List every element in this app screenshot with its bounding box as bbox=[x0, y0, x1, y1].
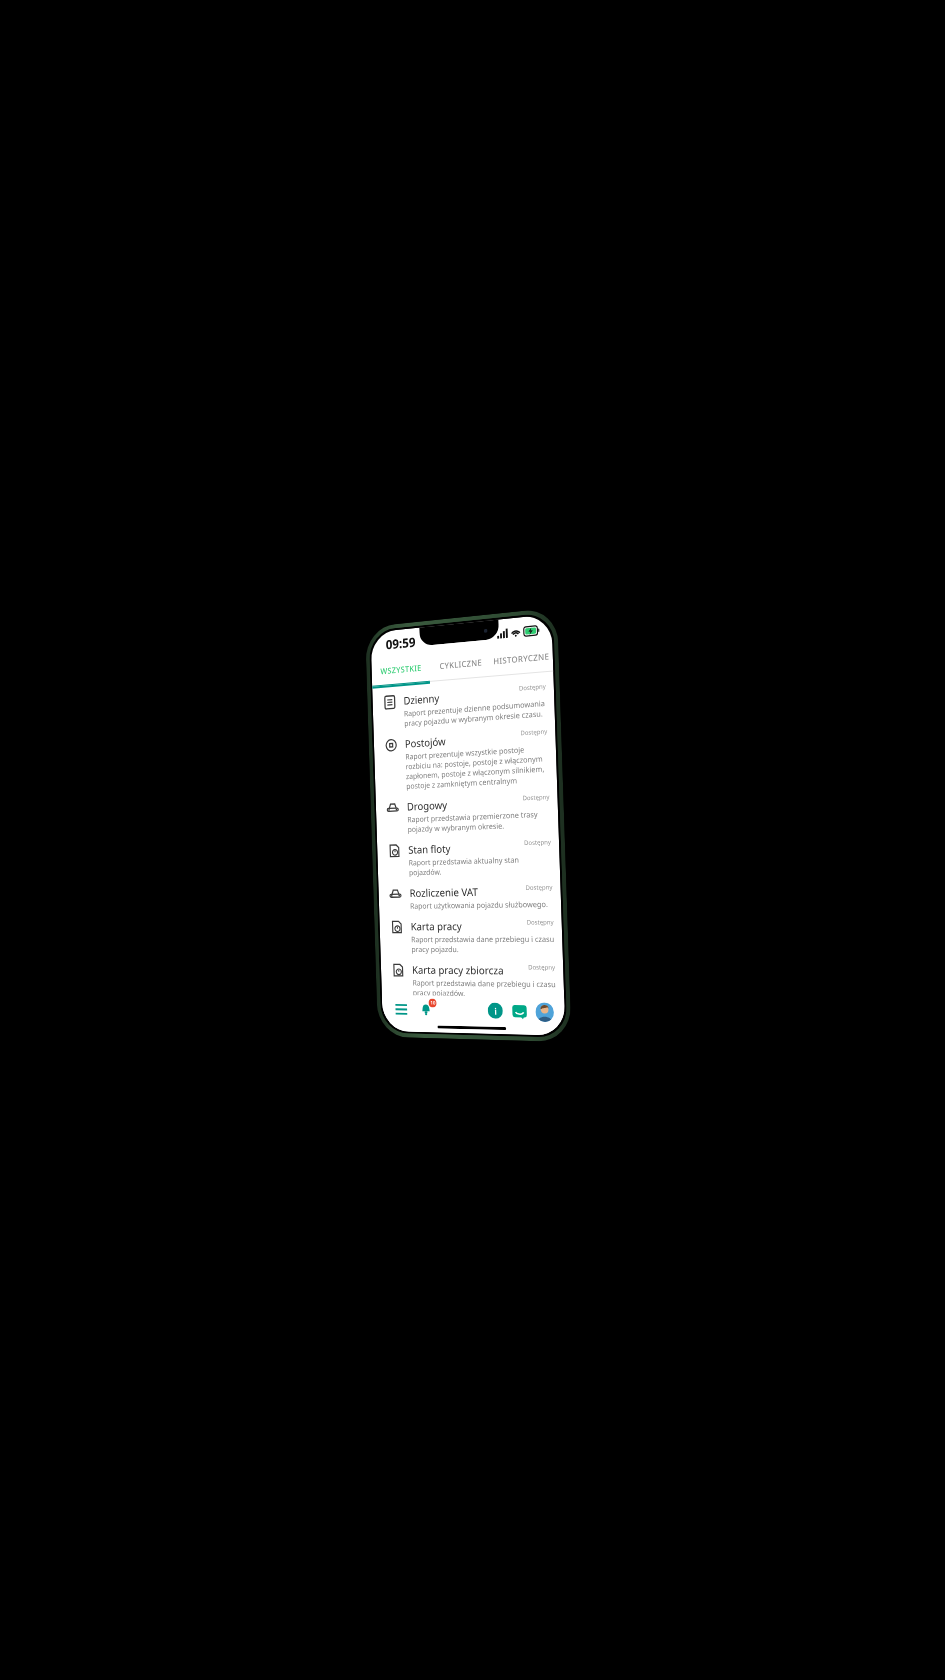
button[interactable]: Menu bbox=[392, 999, 410, 1019]
staticText: Stan floty bbox=[408, 839, 524, 857]
staticText: zapłonem, postoje z włączonym silnikiem, bbox=[406, 763, 545, 781]
button[interactable]: Karta pracy bbox=[379, 910, 563, 955]
staticText: Rozliczenie VAT bbox=[409, 884, 526, 900]
staticText: 09:59 bbox=[385, 633, 416, 653]
staticText: Dostępny bbox=[526, 917, 554, 926]
staticText: Raport przedstawia aktualny stan wybrany… bbox=[408, 853, 552, 867]
staticText: i bbox=[494, 1005, 497, 1017]
staticText: Raport prezentuje dzienne podsumowania bbox=[404, 698, 546, 718]
staticText: pracy pojazdów. bbox=[413, 987, 466, 996]
button[interactable]: Profile bbox=[535, 1002, 554, 1022]
staticText: CYKLICZNE bbox=[439, 656, 482, 671]
button[interactable]: Postojów bbox=[373, 719, 557, 793]
button[interactable]: WSZYSTKIE bbox=[371, 651, 431, 686]
button[interactable]: HISTORYCZNE bbox=[490, 640, 553, 676]
staticText: Dostępny bbox=[528, 962, 555, 971]
staticText: Postojów bbox=[405, 729, 521, 751]
staticText: Dostępny bbox=[519, 681, 546, 692]
staticText: Raport przedstawia przemierzone trasy pr… bbox=[407, 808, 550, 824]
staticText: Karta pracy zbiorcza bbox=[412, 963, 528, 978]
staticText: Dostępny bbox=[520, 726, 548, 736]
staticText: Dostępny bbox=[525, 882, 553, 891]
staticText: Dostępny bbox=[524, 837, 551, 846]
staticText: Dostępny bbox=[522, 792, 550, 801]
button[interactable]: Information bbox=[487, 1002, 503, 1019]
staticText: postoje z zamkniętym centralnym zamkiem bbox=[406, 773, 549, 791]
staticText: HISTORYCZNE bbox=[493, 650, 550, 666]
button[interactable]: Dzienny bbox=[372, 673, 555, 731]
button[interactable]: CYKLICZNE bbox=[430, 645, 491, 681]
staticText: Karta pracy bbox=[410, 918, 527, 933]
staticText: 10 bbox=[430, 999, 436, 1006]
staticText: pracy pojazdu. bbox=[411, 944, 459, 954]
staticText: pracy pojazdu w wybranym okresie czasu. bbox=[404, 708, 543, 728]
button[interactable]: Rozliczenie VAT bbox=[378, 875, 561, 912]
button[interactable]: Drogowy bbox=[375, 784, 559, 836]
staticText: rozbiciu na: postoje, postoje z włączony… bbox=[405, 753, 544, 771]
staticText: Dzienny bbox=[403, 685, 519, 708]
staticText: pojazdy w wybranym okresie. bbox=[407, 820, 504, 834]
button[interactable]: Chat bbox=[511, 1003, 528, 1020]
staticText: Raport przedstawia dane przebiegu i czas… bbox=[412, 978, 556, 989]
staticText: pojazdów. bbox=[409, 867, 442, 877]
button[interactable]: Karta pracy zbiorcza bbox=[381, 955, 564, 999]
button[interactable]: Notifications bbox=[416, 998, 436, 1020]
staticText: Raport użytkowania pojazdu służbowego. bbox=[410, 899, 548, 911]
button[interactable]: Stan floty bbox=[377, 830, 560, 879]
staticText: Raport przedstawia dane przebiegu i czas… bbox=[411, 934, 555, 944]
staticText: Drogowy bbox=[407, 794, 523, 813]
staticText: WSZYSTKIE bbox=[380, 662, 422, 676]
staticText: Raport prezentuje wszystkie postoje poja… bbox=[405, 743, 548, 761]
